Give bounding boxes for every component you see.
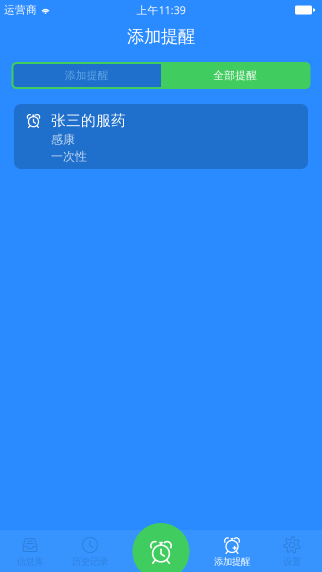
button[interactable]: 新建提醒 — [132, 523, 189, 572]
staticText: 上午11:39 — [136, 3, 185, 17]
button[interactable]: 全部提醒 — [161, 63, 309, 88]
staticText: 添加提醒 — [65, 69, 109, 82]
staticText: 添加提醒 — [214, 556, 250, 567]
staticText: 全部提醒 — [213, 69, 257, 82]
staticText: 运营商 — [4, 3, 37, 16]
staticText: 张三的服药 — [51, 111, 126, 129]
staticText: 设置 — [283, 556, 301, 567]
staticText: 信息库 — [16, 556, 43, 567]
staticText: 感康 — [51, 132, 75, 147]
staticText: 历史记录 — [72, 556, 108, 567]
staticText: 添加提醒 — [127, 26, 195, 47]
button[interactable]: 添加提醒 — [12, 63, 161, 88]
button[interactable]: 历史记录 — [60, 530, 120, 572]
staticText: 一次性 — [51, 149, 87, 164]
button[interactable]: 设置 — [262, 530, 322, 572]
button[interactable]: 添加提醒 — [202, 530, 262, 572]
button[interactable]: 信息库 — [0, 530, 60, 572]
button[interactable]: 张三的服药 — [14, 104, 308, 169]
